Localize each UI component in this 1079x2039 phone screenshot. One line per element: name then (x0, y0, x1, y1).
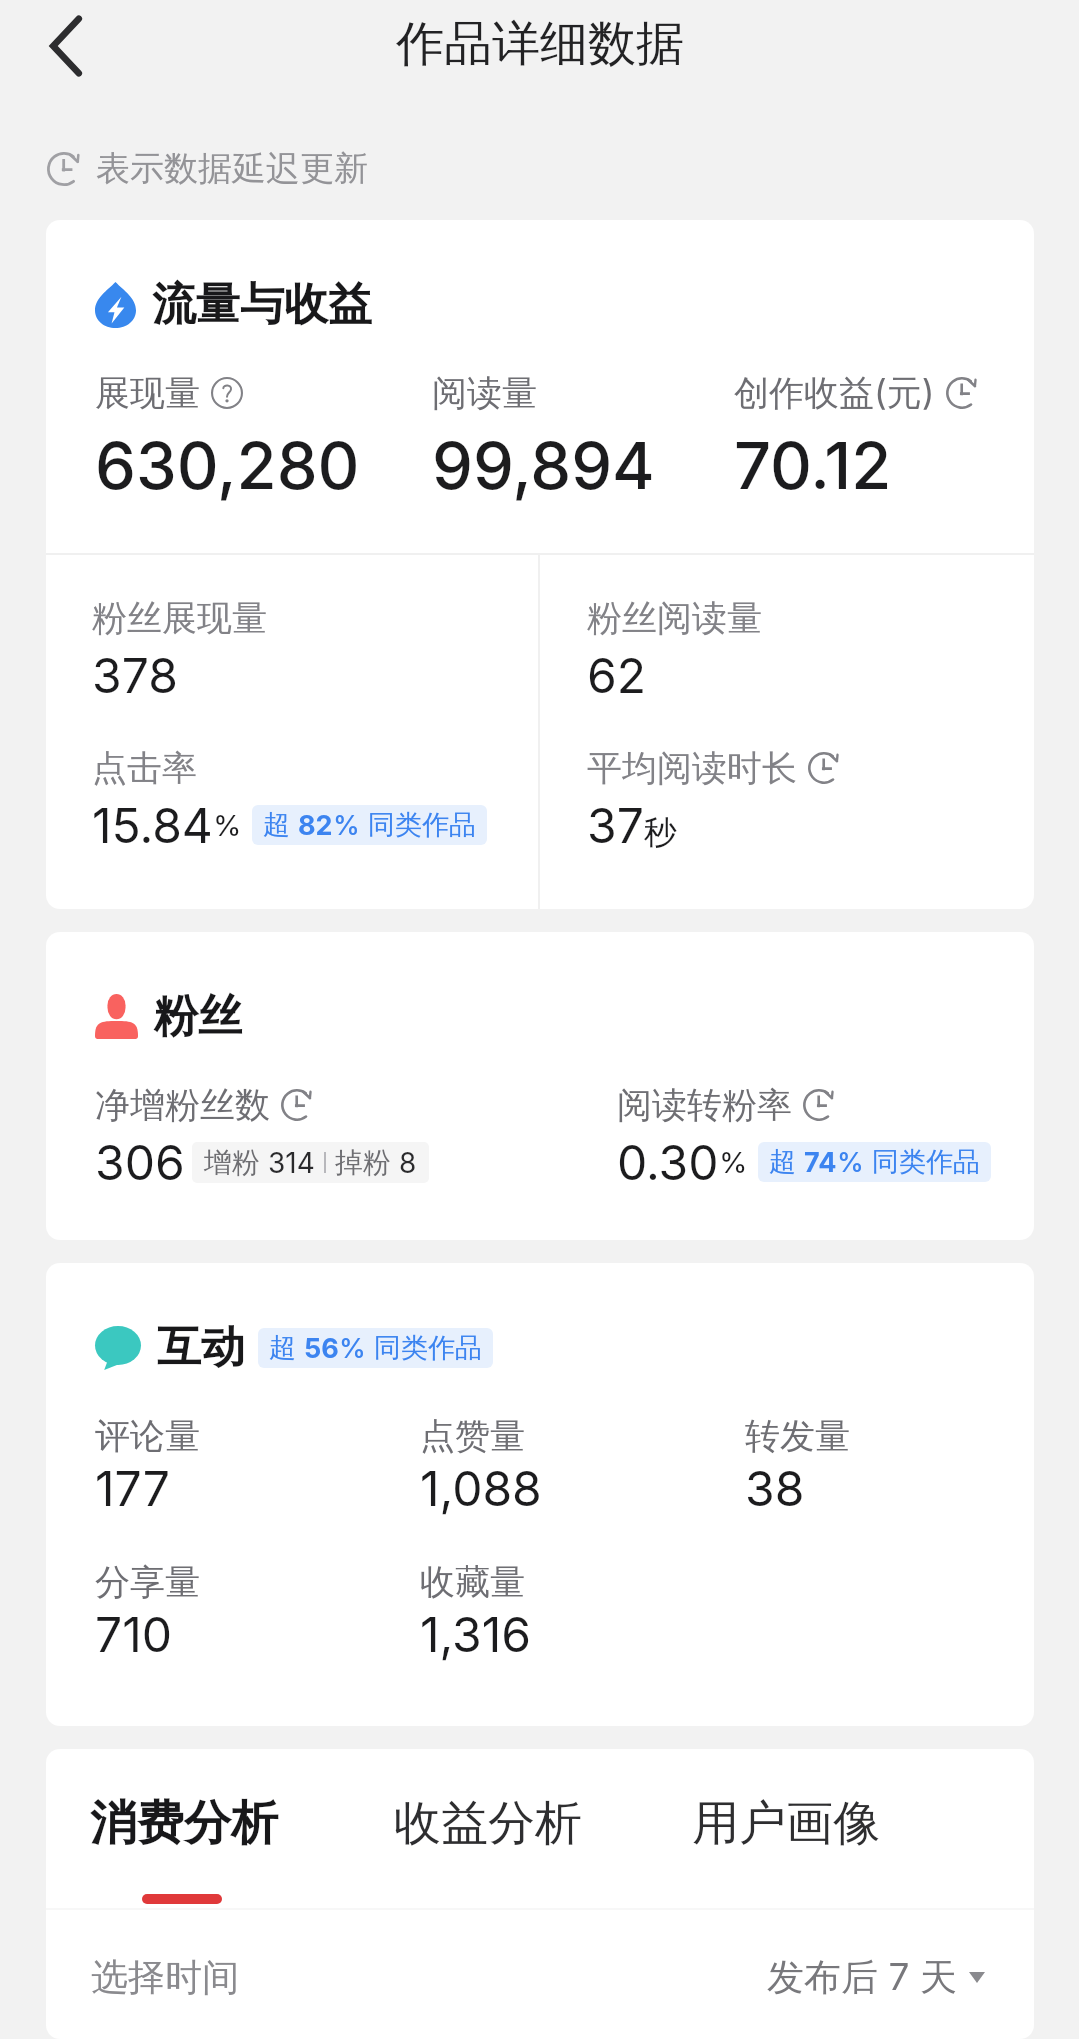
staticText: 99,894 (432, 426, 655, 505)
staticText: 38 (745, 1459, 805, 1517)
staticText: 分享量 (95, 1560, 200, 1604)
staticText: 8 (399, 1146, 417, 1180)
staticText: 56 (304, 1332, 339, 1365)
staticText: 平均阅读时长 (587, 746, 797, 790)
staticText: 增粉 (204, 1145, 268, 1180)
staticText: 378 (92, 646, 178, 704)
staticText: 粉丝展现量 (92, 596, 267, 640)
staticText: 评论量 (95, 1414, 200, 1458)
staticText: 0.30 (617, 1133, 719, 1191)
staticText: 点击率 (92, 746, 197, 790)
staticText: 1,316 (420, 1605, 531, 1663)
staticText: 转发量 (745, 1414, 850, 1458)
staticText: 点赞量 (420, 1414, 525, 1458)
staticText: % (837, 1146, 872, 1179)
staticText: 82 (298, 809, 333, 842)
staticText: 62 (587, 646, 647, 704)
staticText: 710 (95, 1605, 172, 1663)
staticText: 1,088 (420, 1459, 542, 1517)
staticText: 306 (95, 1133, 185, 1191)
button[interactable]: 消费分析 (90, 1749, 394, 1910)
button[interactable]: 收益分析 (394, 1749, 692, 1910)
staticText: 超 (769, 1145, 804, 1179)
staticText: 阅读量 (432, 371, 537, 415)
staticText: 表示数据延迟更新 (96, 147, 368, 190)
staticText: % (339, 1332, 374, 1365)
staticText: 74 (804, 1146, 837, 1179)
staticText: 阅读转粉率 (617, 1083, 792, 1127)
staticText: 同类作品 (368, 808, 476, 842)
staticText: 秒 (644, 812, 677, 854)
staticText: % (333, 809, 368, 842)
button[interactable]: Back (23, 3, 109, 89)
staticText: 超 (263, 808, 298, 842)
button[interactable]: 发布后 7 天 (767, 1954, 985, 2001)
staticText: 同类作品 (374, 1331, 482, 1365)
staticText: 掉粉 (335, 1145, 399, 1180)
staticText: 177 (95, 1459, 170, 1517)
staticText: 314 (268, 1146, 315, 1180)
staticText: 展现量 (95, 371, 200, 415)
staticText: 用户画像 (692, 1794, 880, 1853)
staticText: 作品详细数据 (396, 14, 684, 74)
staticText: 收藏量 (420, 1560, 525, 1604)
staticText: 净增粉丝数 (95, 1083, 270, 1127)
staticText: 流量与收益 (152, 277, 372, 332)
staticText: 创作收益(元) (734, 371, 935, 415)
staticText: 互动 (157, 1320, 245, 1375)
staticText: 同类作品 (872, 1145, 980, 1179)
staticText: 超 (269, 1331, 304, 1365)
staticText: 粉丝阅读量 (587, 596, 762, 640)
staticText: 15.84 (92, 796, 213, 854)
staticText: 630,280 (95, 426, 360, 505)
staticText: 收益分析 (394, 1794, 582, 1853)
staticText: % (213, 808, 242, 843)
staticText: 选择时间 (91, 1954, 239, 2001)
staticText: 37 (587, 796, 644, 854)
staticText: 粉丝 (154, 989, 242, 1044)
staticText: % (719, 1145, 748, 1180)
staticText: 消费分析 (90, 1794, 278, 1853)
button[interactable]: 用户画像 (692, 1749, 1034, 1910)
staticText: 70.12 (734, 426, 892, 505)
staticText: 发布后 7 天 (767, 1954, 957, 2001)
